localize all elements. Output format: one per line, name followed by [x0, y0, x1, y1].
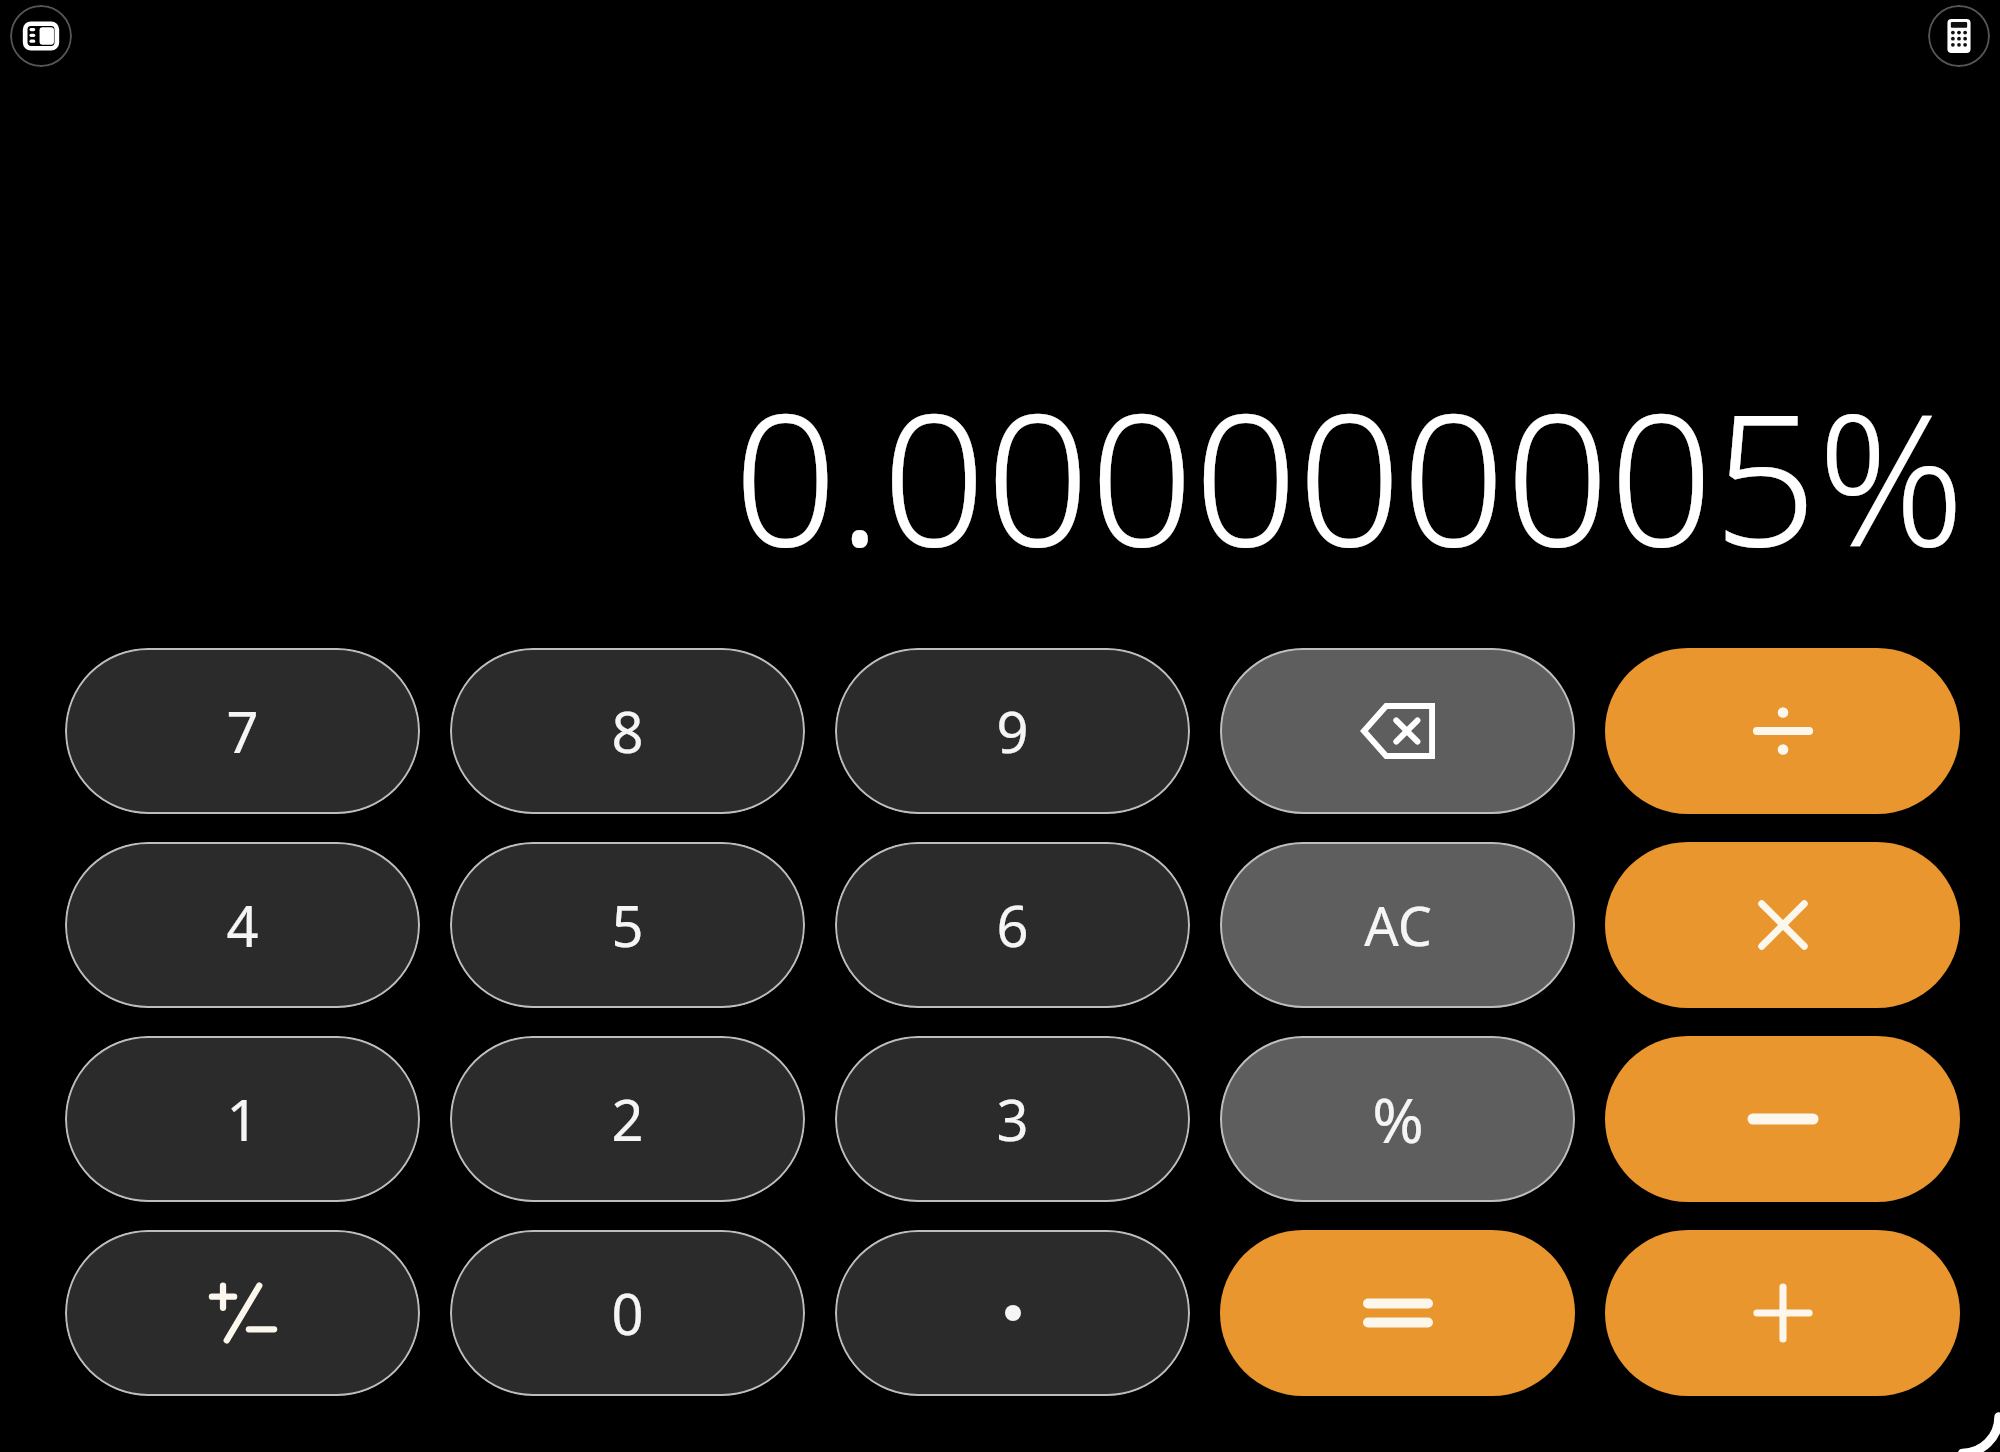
staticText: 7 [226, 693, 259, 769]
button[interactable]: 8 [450, 648, 805, 814]
button[interactable]: 3 [835, 1036, 1190, 1202]
button[interactable]: Decimal point [835, 1230, 1190, 1396]
button[interactable]: Multiply [1605, 842, 1960, 1008]
staticText: 0 [611, 1275, 644, 1351]
button[interactable]: Calculator [1928, 5, 1990, 67]
staticText: 3 [996, 1081, 1029, 1157]
staticText: 4 [226, 887, 259, 963]
button[interactable]: 4 [65, 842, 420, 1008]
button[interactable]: 7 [65, 648, 420, 814]
staticText: 8 [611, 693, 644, 769]
button[interactable]: Minus [1605, 1036, 1960, 1202]
staticText: % [1372, 1077, 1424, 1161]
button[interactable]: 1 [65, 1036, 420, 1202]
staticText: 6 [996, 887, 1029, 963]
button[interactable]: AC [1220, 842, 1575, 1008]
button[interactable]: Plus minus [65, 1230, 420, 1396]
button[interactable]: Plus [1605, 1230, 1960, 1396]
button[interactable]: % [1220, 1036, 1575, 1202]
button[interactable]: Divide [1605, 648, 1960, 814]
button[interactable]: 0 [450, 1230, 805, 1396]
staticText: 0.000000005% [733, 351, 1965, 599]
button[interactable]: 2 [450, 1036, 805, 1202]
button[interactable]: 6 [835, 842, 1190, 1008]
button[interactable]: 5 [450, 842, 805, 1008]
staticText: 9 [996, 693, 1029, 769]
staticText: 2 [611, 1081, 644, 1157]
staticText: 1 [226, 1081, 259, 1157]
button[interactable]: 9 [835, 648, 1190, 814]
button[interactable]: Backspace [1220, 648, 1575, 814]
staticText: 5 [611, 887, 644, 963]
staticText: AC [1364, 888, 1432, 962]
button[interactable]: Layout [10, 5, 72, 67]
button[interactable]: Equals [1220, 1230, 1575, 1396]
